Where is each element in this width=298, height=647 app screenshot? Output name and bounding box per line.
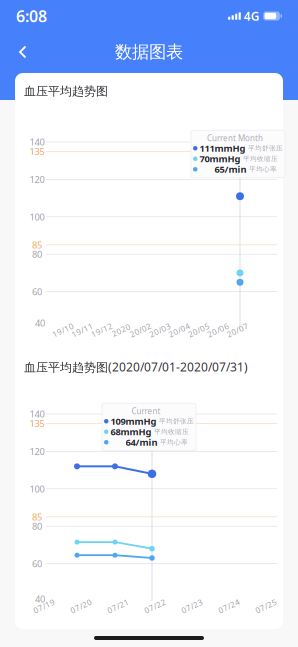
staticText: 平均收缩压 <box>154 428 189 436</box>
staticText: 平均收缩压 <box>243 155 278 163</box>
staticText: 70mmHg <box>199 153 240 165</box>
staticText: 07/20 <box>69 601 92 611</box>
staticText: 135 <box>29 145 44 158</box>
staticText: 07/19 <box>32 601 55 611</box>
staticText: 07/23 <box>180 601 203 611</box>
staticText: 20/04 <box>168 325 191 335</box>
staticText: 血压平均趋势图 <box>24 84 108 99</box>
staticText: 100 <box>29 211 44 223</box>
staticText: 85 <box>32 239 42 251</box>
staticText: 4G <box>244 8 260 24</box>
staticText: 07/22 <box>143 601 166 611</box>
staticText: 109mmHg <box>110 415 156 427</box>
staticText: 111mmHg <box>199 142 245 154</box>
staticText: 6:08 <box>16 5 47 27</box>
button[interactable]: Back <box>4 32 42 72</box>
staticText: 120 <box>29 445 44 458</box>
staticText: 65/min <box>214 163 246 175</box>
staticText: 数据图表 <box>115 41 183 63</box>
staticText: 120 <box>29 173 44 186</box>
staticText: 20/02 <box>129 325 152 335</box>
staticText: 68mmHg <box>110 426 151 438</box>
staticText: 07/21 <box>106 601 129 611</box>
staticText: 40 <box>35 317 45 329</box>
staticText: 血压平均趋势图(2020/07/01-2020/07/31) <box>24 359 248 375</box>
staticText: 平均舒张压 <box>248 144 283 152</box>
staticText: 20/06 <box>207 325 230 335</box>
staticText: Current <box>131 406 160 416</box>
staticText: 80 <box>32 248 42 260</box>
staticText: 07/25 <box>254 601 277 611</box>
staticText: 135 <box>29 417 44 430</box>
staticText: 2020 <box>111 325 131 335</box>
staticText: 19/11 <box>71 325 94 335</box>
staticText: 80 <box>32 520 42 532</box>
staticText: 140 <box>29 408 44 420</box>
staticText: 20/03 <box>148 325 171 335</box>
staticText: 20/05 <box>187 325 210 335</box>
staticText: 20/07 <box>226 325 249 335</box>
staticText: 平均舒张压 <box>159 417 194 425</box>
staticText: 64/min <box>125 436 157 448</box>
staticText: 140 <box>29 136 44 148</box>
staticText: 60 <box>32 557 42 570</box>
staticText: 40 <box>35 593 45 605</box>
staticText: 85 <box>32 511 42 523</box>
staticText: 平均心率 <box>160 438 188 446</box>
staticText: 60 <box>32 285 42 298</box>
staticText: 平均心率 <box>249 165 277 173</box>
staticText: 19/12 <box>90 325 113 335</box>
staticText: 100 <box>29 483 44 495</box>
staticText: 07/24 <box>217 601 240 611</box>
staticText: Current Month <box>207 133 263 143</box>
staticText: 19/10 <box>51 325 74 335</box>
